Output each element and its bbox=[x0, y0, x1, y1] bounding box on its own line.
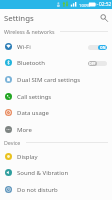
button[interactable]: Do not disturb bbox=[0, 181, 112, 198]
staticText: 02:52 bbox=[99, 1, 112, 8]
button[interactable]: Bluetooth bbox=[0, 54, 112, 71]
staticText: ON bbox=[100, 45, 106, 50]
staticText: Bluetooth bbox=[17, 59, 88, 67]
staticText: More bbox=[17, 126, 107, 134]
staticText: Call settings bbox=[17, 93, 107, 101]
staticText: Device bbox=[4, 139, 21, 146]
button[interactable]: Wi-Fi bbox=[0, 38, 112, 55]
staticText: 100% bbox=[79, 2, 90, 8]
button[interactable]: More bbox=[0, 121, 112, 138]
button[interactable]: Search bbox=[96, 9, 112, 27]
staticText: Data usage bbox=[17, 109, 107, 117]
staticText: Settings bbox=[4, 13, 34, 24]
staticText: Do not disturb bbox=[17, 186, 107, 194]
staticText: Display bbox=[17, 153, 107, 161]
staticText: OFF bbox=[89, 61, 96, 66]
button[interactable]: Off bbox=[88, 57, 107, 69]
button[interactable]: Sound & Vibration bbox=[0, 164, 112, 181]
button[interactable]: Data usage bbox=[0, 104, 112, 121]
button[interactable]: Dual SIM card settings bbox=[0, 71, 112, 88]
staticText: Wireless & networks bbox=[4, 28, 55, 35]
button[interactable]: On bbox=[88, 41, 107, 53]
staticText: Sound & Vibration bbox=[17, 169, 107, 177]
button[interactable]: Call settings bbox=[0, 88, 112, 105]
staticText: Dual SIM card settings bbox=[17, 76, 107, 84]
staticText: Wi-Fi bbox=[17, 43, 88, 51]
button[interactable]: Display bbox=[0, 148, 112, 165]
